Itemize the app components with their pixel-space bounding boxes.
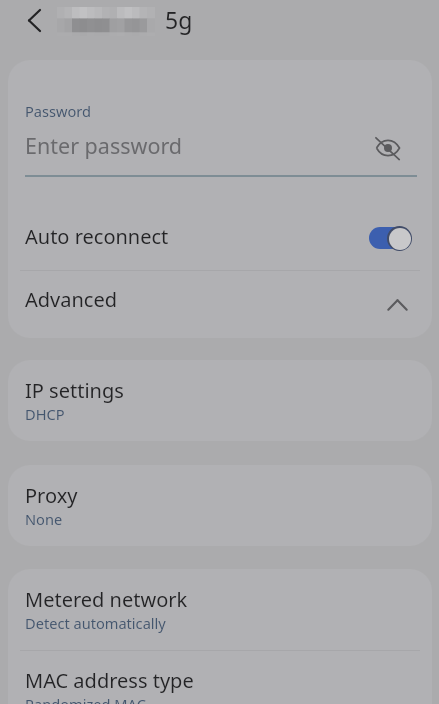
- button[interactable]: MAC address type: [8, 650, 432, 704]
- button[interactable]: Metered network: [8, 569, 432, 650]
- staticText: IP settings: [25, 377, 124, 404]
- button[interactable]: Advanced: [8, 270, 432, 338]
- staticText: Enter password: [25, 131, 183, 160]
- staticText: DHCP: [25, 404, 65, 424]
- button[interactable]: Proxy: [8, 465, 432, 546]
- staticText: 5g: [165, 4, 193, 35]
- staticText: MAC address type: [25, 667, 194, 694]
- button[interactable]: Navigate up: [18, 6, 50, 38]
- button[interactable]: Auto reconnect: [8, 201, 432, 270]
- staticText: None: [25, 509, 63, 529]
- staticText: Detect automatically: [25, 613, 166, 633]
- button[interactable]: Show password: [367, 127, 409, 169]
- button[interactable]: IP settings: [8, 360, 432, 441]
- staticText: Randomized MAC: [25, 694, 146, 704]
- staticText: Metered network: [25, 586, 188, 613]
- staticText: Advanced: [25, 286, 117, 313]
- staticText: Password: [25, 101, 92, 121]
- staticText: Auto reconnect: [25, 223, 169, 250]
- staticText: Proxy: [25, 482, 78, 509]
- button[interactable]: Auto reconnect: [369, 223, 410, 253]
